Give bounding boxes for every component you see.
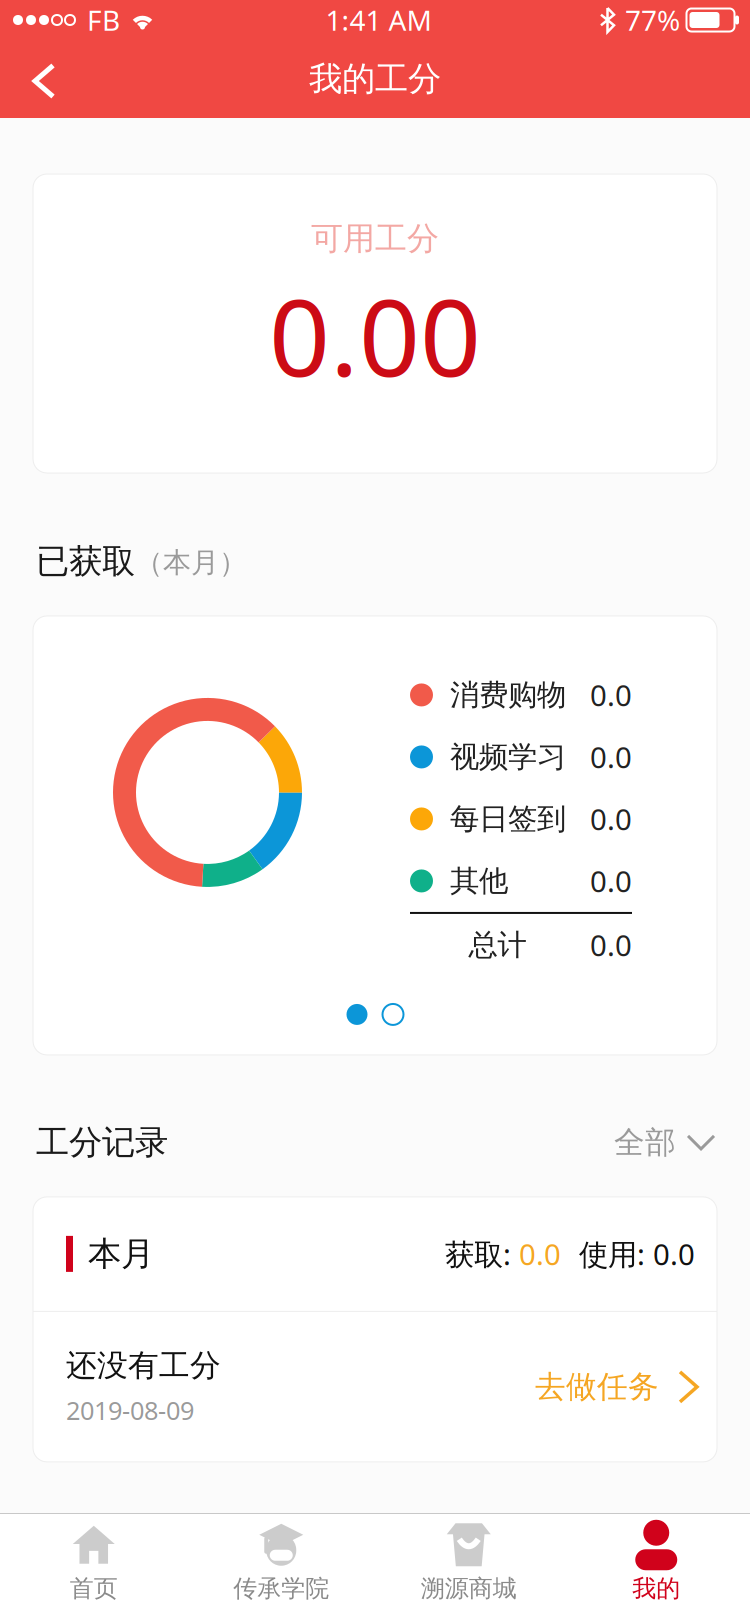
- staticText: 0.0: [590, 675, 632, 714]
- staticText: 其他: [450, 863, 508, 899]
- button[interactable]: 传承学院: [187, 1514, 375, 1611]
- staticText: 0.0: [590, 861, 632, 900]
- staticText: 工分记录: [36, 1122, 168, 1163]
- staticText: 0.0: [519, 1234, 561, 1273]
- staticText: 已获取: [36, 541, 135, 582]
- staticText: 消费购物: [450, 677, 566, 713]
- staticText: 0.0: [590, 925, 632, 964]
- staticText: 溯源商城: [421, 1574, 517, 1603]
- staticText: 0.00: [269, 264, 481, 406]
- staticText: 本月: [88, 1233, 154, 1274]
- staticText: 首页: [70, 1574, 118, 1603]
- staticText: 使用:: [561, 1234, 653, 1273]
- staticText: 0.0: [590, 799, 632, 838]
- staticText: 我的工分: [309, 58, 441, 99]
- staticText: 去做任务: [535, 1368, 659, 1406]
- staticText: 传承学院: [233, 1574, 329, 1603]
- staticText: 2019-08-09: [66, 1393, 194, 1427]
- staticText: 我的: [632, 1574, 680, 1603]
- button[interactable]: 首页: [0, 1514, 187, 1611]
- staticText: （本月）: [135, 546, 247, 580]
- staticText: 全部: [614, 1124, 676, 1161]
- staticText: 1:41 AM: [325, 1, 431, 39]
- staticText: 可用工分: [311, 219, 439, 258]
- button[interactable]: 还没有工分: [33, 1312, 717, 1462]
- staticText: 视频学习: [450, 739, 566, 775]
- button[interactable]: Back: [0, 41, 79, 116]
- staticText: 总计: [468, 927, 526, 963]
- staticText: 0.0: [590, 737, 632, 776]
- staticText: 0.0: [653, 1234, 695, 1273]
- staticText: FB: [87, 1, 120, 39]
- button[interactable]: 溯源商城: [375, 1514, 562, 1611]
- staticText: 77%: [625, 1, 680, 39]
- staticText: 每日签到: [450, 801, 566, 837]
- button[interactable]: 我的: [562, 1514, 750, 1611]
- staticText: 获取:: [445, 1234, 519, 1273]
- staticText: 还没有工分: [66, 1347, 221, 1384]
- button[interactable]: 全部: [614, 1124, 714, 1161]
